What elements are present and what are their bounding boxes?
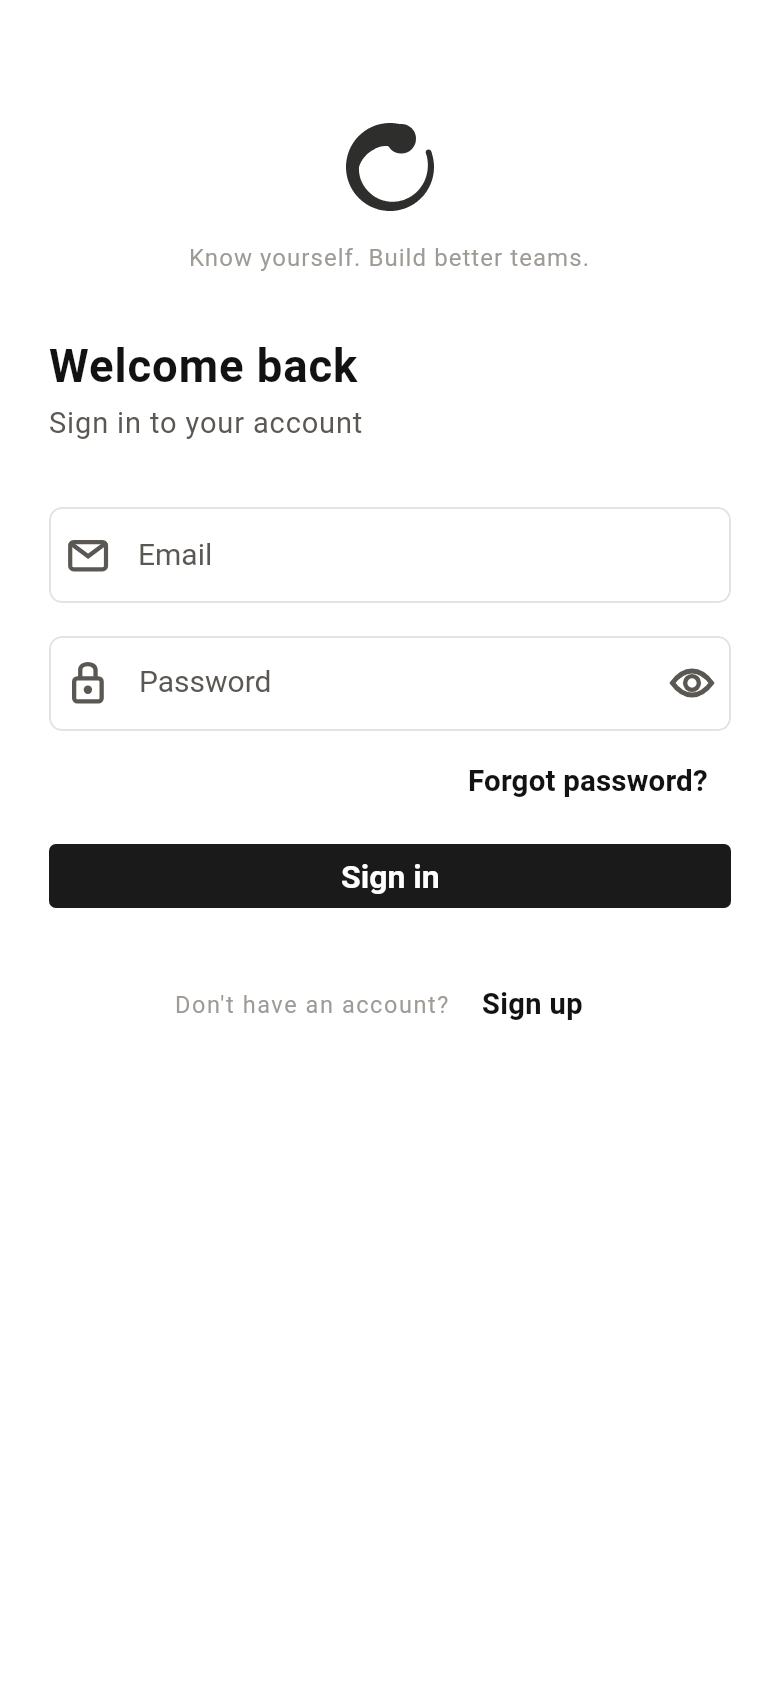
staticText: Know yourself. Build better teams.: [189, 244, 591, 272]
staticText: Sign up: [482, 987, 583, 1021]
button[interactable]: Sign in: [49, 844, 731, 908]
staticText: Don't have an account?: [175, 991, 450, 1019]
button[interactable]: Email: [49, 507, 731, 603]
button[interactable]: Forgot password?: [444, 755, 732, 806]
other: App logo: [346, 123, 434, 211]
staticText: Password: [139, 664, 272, 699]
button[interactable]: Sign up: [465, 980, 600, 1030]
staticText: Welcome back: [49, 340, 359, 393]
button[interactable]: Password: [49, 636, 731, 731]
staticText: Email: [138, 537, 213, 572]
staticText: Sign in: [341, 858, 440, 896]
staticText: Sign in to your account: [49, 406, 364, 440]
staticText: Forgot password?: [468, 764, 708, 799]
button[interactable]: Show password: [660, 651, 724, 715]
